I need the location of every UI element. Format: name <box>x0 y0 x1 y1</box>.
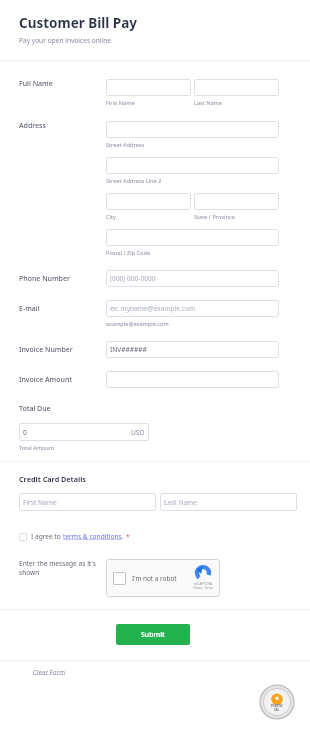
staticText: First Name <box>23 498 57 507</box>
staticText: Submit <box>141 630 165 640</box>
staticText: First Name <box>106 99 135 107</box>
staticText: Pay your open invoices online. <box>19 36 113 45</box>
staticText: * <box>126 532 130 541</box>
staticText: Customer Bill Pay <box>19 14 138 32</box>
staticText: . <box>122 532 126 541</box>
button[interactable]: Clear Form <box>33 668 65 676</box>
staticText: I agree to <box>31 532 63 541</box>
staticText: reCAPTCHA <box>194 581 213 586</box>
staticText: Clear Form <box>33 668 65 676</box>
button[interactable] <box>106 79 191 96</box>
staticText: Credit Card Details <box>19 474 86 484</box>
button[interactable]: Security seal <box>260 685 294 719</box>
button[interactable] <box>106 157 279 174</box>
staticText: Last Name <box>164 498 198 507</box>
staticText: Invoice Amount <box>19 375 72 385</box>
staticText: Address <box>19 121 46 131</box>
staticText: Street Address Line 2 <box>106 177 162 185</box>
staticText: SSL <box>274 708 280 712</box>
staticText: Invoice Number <box>19 345 73 355</box>
staticText: Phone Number <box>19 274 70 284</box>
staticText: USD <box>131 428 145 437</box>
staticText: Full Name <box>19 79 53 89</box>
button[interactable] <box>106 193 191 210</box>
staticText: Total Due <box>19 404 51 414</box>
staticText: City <box>106 213 116 221</box>
staticText: Enter the message as it's shown <box>19 559 106 577</box>
button[interactable]: First Name <box>19 493 156 511</box>
button[interactable]: Last Name <box>160 493 297 511</box>
button[interactable]: I agree to <box>19 532 130 541</box>
staticText: Total Amount <box>19 444 55 452</box>
button[interactable] <box>106 371 279 388</box>
staticText: POSITIVE <box>271 704 283 708</box>
staticText: ex: myname@example.com <box>110 304 196 313</box>
button[interactable] <box>106 121 279 138</box>
button[interactable]: I'm not a robot <box>106 559 220 597</box>
button[interactable] <box>194 193 279 210</box>
staticText: Last Name <box>194 99 222 107</box>
button[interactable]: 0 <box>19 423 149 441</box>
button[interactable] <box>106 229 279 246</box>
staticText: terms & conditions <box>63 532 122 541</box>
staticText: 0 <box>23 428 27 437</box>
other: reCAPTCHA logo <box>196 566 210 580</box>
staticText: Privacy - Terms <box>193 586 213 590</box>
staticText: Postal / Zip Code <box>106 249 151 257</box>
staticText: E-mail <box>19 304 40 314</box>
button[interactable]: Submit <box>116 624 190 645</box>
button[interactable]: INV###### <box>106 341 279 358</box>
button[interactable] <box>194 79 279 96</box>
staticText: Street Address <box>106 141 145 149</box>
staticText: INV###### <box>110 345 147 354</box>
button[interactable]: (000) 000-0000 <box>106 270 279 287</box>
staticText: (000) 000-0000 <box>110 274 156 283</box>
staticText: I'm not a robot <box>132 574 177 583</box>
button[interactable]: ex: myname@example.com <box>106 300 279 317</box>
staticText: example@example.com <box>106 320 169 328</box>
staticText: State / Province <box>194 213 235 221</box>
